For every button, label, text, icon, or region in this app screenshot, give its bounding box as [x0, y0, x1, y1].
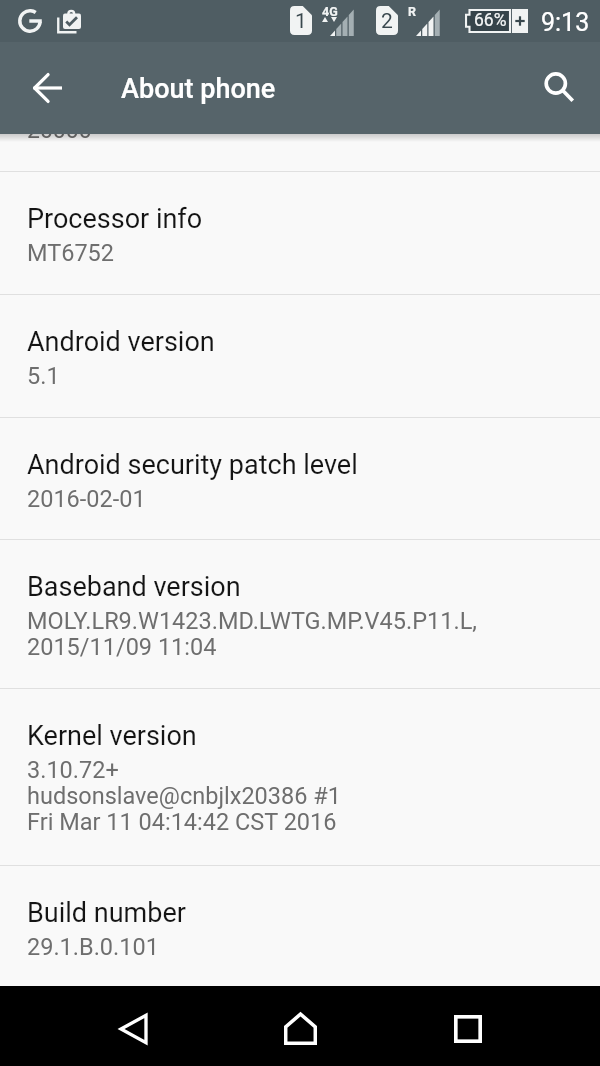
staticText: 3.10.72+ hudsonslave@cnbjlx20386 #1 Fri … [27, 756, 341, 836]
staticText: R [408, 4, 416, 19]
button[interactable]: Build number [0, 866, 600, 986]
staticText: 29.1.B.0.101 [27, 933, 159, 961]
staticText: MT6752 [27, 239, 115, 267]
button[interactable]: Android version [0, 295, 600, 417]
staticText: Build number [27, 897, 186, 929]
staticText: Android version [27, 326, 215, 358]
staticText: 20000 [27, 134, 92, 144]
button[interactable]: Back [93, 989, 174, 1066]
staticText: Kernel version [27, 720, 197, 752]
button[interactable]: Home [260, 988, 340, 1066]
staticText: Baseband version [27, 571, 241, 603]
button[interactable]: Processor info [0, 172, 600, 294]
staticText: MOLY.LR9.W1423.MD.LWTG.MP.V45.P11.L, 201… [27, 607, 477, 661]
staticText: 5.1 [27, 362, 60, 390]
staticText: 66% [474, 10, 507, 31]
staticText: 2 [381, 9, 393, 34]
staticText: Processor info [27, 203, 203, 235]
button[interactable]: Navigate up [23, 42, 71, 134]
staticText: 2016-02-01 [27, 485, 146, 513]
button[interactable]: Kernel version [0, 689, 600, 865]
button[interactable]: Android security patch level [0, 418, 600, 539]
staticText: About phone [121, 73, 276, 105]
button[interactable]: Search [535, 42, 583, 134]
staticText: 9:13 [541, 8, 590, 37]
button[interactable]: Recent apps [427, 989, 508, 1066]
staticText: Android security patch level [27, 449, 358, 481]
staticText: 4G [322, 4, 338, 19]
button[interactable]: Baseband version [0, 540, 600, 688]
staticText: 1 [295, 9, 307, 34]
